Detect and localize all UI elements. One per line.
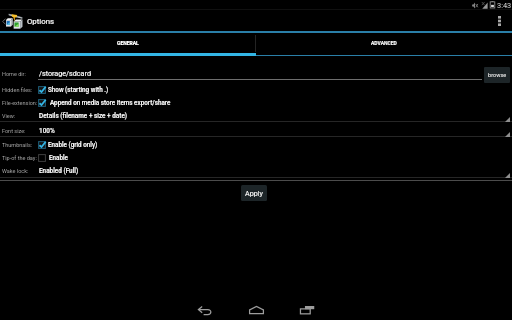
staticText: Enabled (Full) bbox=[39, 167, 79, 175]
staticText: browse bbox=[488, 72, 507, 79]
staticText: Tip-of the day: bbox=[2, 155, 37, 161]
staticText: 100% bbox=[39, 127, 55, 135]
staticText: Font size: bbox=[2, 128, 26, 134]
button[interactable]: Back bbox=[185, 298, 225, 320]
staticText: Home dir: bbox=[2, 71, 26, 77]
staticText: View: bbox=[2, 113, 16, 119]
staticText: Hidden files: bbox=[2, 87, 33, 93]
button[interactable]: Navigate up bbox=[0, 11, 54, 31]
staticText: Wake lock: bbox=[2, 168, 29, 174]
staticText: Enable (grid only) bbox=[48, 141, 98, 148]
staticText: Options bbox=[27, 17, 54, 26]
button[interactable]: GENERAL bbox=[0, 33, 255, 53]
button[interactable]: Recent apps bbox=[287, 298, 327, 320]
staticText: /storage/sdcard bbox=[39, 69, 91, 77]
button[interactable]: Home bbox=[236, 298, 276, 320]
button[interactable]: More options bbox=[492, 11, 512, 31]
staticText: Enable bbox=[49, 154, 68, 161]
staticText: Apply bbox=[245, 189, 263, 197]
staticText: 3:43 bbox=[497, 1, 512, 10]
button[interactable]: ADVANCED bbox=[256, 33, 512, 53]
staticText: Show (starting with .) bbox=[48, 86, 109, 93]
staticText: GENERAL bbox=[117, 40, 139, 46]
staticText: Details (filename + size + date) bbox=[39, 112, 128, 120]
staticText: File-extension: bbox=[2, 100, 38, 106]
button[interactable]: browse bbox=[484, 67, 510, 83]
staticText: Thumbnails: bbox=[2, 142, 33, 148]
button[interactable]: Apply bbox=[241, 185, 267, 201]
staticText: Append on media store items export/share bbox=[50, 99, 171, 106]
staticText: ADVANCED bbox=[371, 40, 397, 46]
